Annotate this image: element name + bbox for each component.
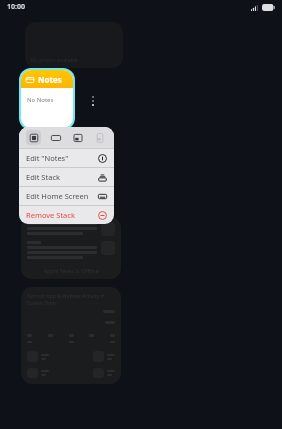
staticText: Remove Stack xyxy=(26,210,98,220)
staticText: No photos available xyxy=(31,57,78,64)
staticText: No Notes xyxy=(27,96,54,104)
staticText: Notes xyxy=(38,74,62,85)
button[interactable]: Extra large widget size xyxy=(92,130,107,145)
staticText: 10:00 xyxy=(7,2,25,12)
button[interactable]: Turn on App & Website Activity in Screen… xyxy=(21,287,121,384)
button[interactable]: Edit Home Screen xyxy=(19,187,114,205)
staticText: Edit Home Screen xyxy=(26,191,98,201)
staticText: Apple News Is Offline xyxy=(43,267,99,274)
button[interactable]: Apple News Is Offline xyxy=(21,217,121,279)
button[interactable]: Small widget size xyxy=(26,130,41,145)
staticText: Edit Stack xyxy=(26,172,98,182)
button[interactable]: Large widget size xyxy=(70,130,85,145)
button[interactable]: Edit Stack xyxy=(19,168,114,186)
button[interactable]: Edit "Notes" xyxy=(19,149,114,167)
button[interactable]: Medium widget size xyxy=(48,130,63,145)
button[interactable]: Notes xyxy=(21,70,73,128)
staticText: Turn on App & Website Activity in Screen… xyxy=(27,293,115,307)
staticText: Edit "Notes" xyxy=(26,153,98,163)
button[interactable]: Remove Stack xyxy=(19,206,114,224)
